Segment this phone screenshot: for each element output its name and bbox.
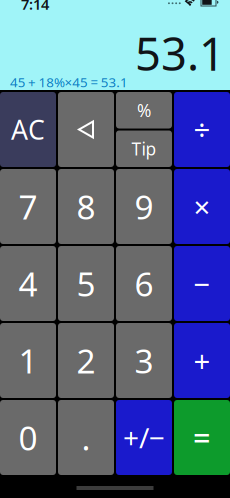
- staticText: 5: [76, 261, 95, 306]
- button[interactable]: 4: [0, 246, 56, 321]
- staticText: AC: [11, 112, 45, 147]
- staticText: 0: [18, 415, 37, 460]
- staticText: 53.1: [135, 23, 225, 83]
- staticText: Tip: [131, 137, 156, 160]
- button[interactable]: 3: [116, 323, 172, 398]
- button[interactable]: %: [116, 92, 172, 128]
- staticText: +: [193, 341, 210, 380]
- staticText: ÷: [193, 110, 210, 149]
- staticText: −: [193, 264, 210, 303]
- staticText: %: [137, 99, 151, 122]
- staticText: 8: [76, 184, 95, 229]
- button[interactable]: +/−: [116, 400, 172, 475]
- button[interactable]: Delete: [58, 92, 114, 167]
- button[interactable]: AC: [0, 92, 56, 167]
- staticText: 9: [134, 184, 153, 229]
- staticText: =: [193, 417, 211, 458]
- button[interactable]: 9: [116, 169, 172, 244]
- staticText: +/−: [123, 419, 165, 456]
- button[interactable]: +: [174, 323, 230, 398]
- button[interactable]: Tip: [116, 130, 172, 167]
- button[interactable]: 2: [58, 323, 114, 398]
- button[interactable]: ÷: [174, 92, 230, 167]
- staticText: 6: [134, 261, 153, 306]
- staticText: 2: [76, 338, 95, 383]
- button[interactable]: 5: [58, 246, 114, 321]
- staticText: .: [81, 415, 90, 460]
- button[interactable]: −: [174, 246, 230, 321]
- button[interactable]: 0: [0, 400, 56, 475]
- staticText: 3: [134, 338, 153, 383]
- staticText: ×: [193, 187, 210, 226]
- button[interactable]: .: [58, 400, 114, 475]
- staticText: 7: [18, 184, 37, 229]
- staticText: 4: [18, 261, 37, 306]
- button[interactable]: =: [174, 400, 230, 475]
- button[interactable]: 7: [0, 169, 56, 244]
- button[interactable]: 6: [116, 246, 172, 321]
- button[interactable]: ×: [174, 169, 230, 244]
- staticText: 7:14: [21, 0, 49, 14]
- button[interactable]: 8: [58, 169, 114, 244]
- staticText: 45 + 18%×45 = 53.1: [10, 73, 128, 91]
- button[interactable]: 1: [0, 323, 56, 398]
- staticText: 1: [18, 338, 37, 383]
